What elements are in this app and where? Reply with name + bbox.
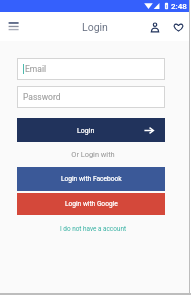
other: Submit <box>144 127 154 134</box>
button[interactable]: Menu <box>6 20 20 32</box>
staticText: Login with Google <box>65 200 118 208</box>
button[interactable]: Email <box>17 58 165 80</box>
staticText: Login <box>82 21 108 33</box>
button[interactable]: Login <box>17 118 165 142</box>
staticText: Password <box>23 92 61 102</box>
staticText: Login with Facebook <box>61 175 122 183</box>
button[interactable]: Password <box>17 86 165 108</box>
button[interactable]: Favorites <box>170 19 186 35</box>
staticText: Or Login with <box>0 150 186 159</box>
button[interactable]: I do not have a account <box>0 225 186 233</box>
staticText: 2:48 <box>171 2 187 11</box>
button[interactable]: Login with Google <box>17 193 165 215</box>
staticText: Email <box>25 64 47 74</box>
button[interactable]: Account <box>147 19 163 35</box>
button[interactable]: Login with Facebook <box>17 167 165 191</box>
staticText: Login <box>77 127 95 135</box>
